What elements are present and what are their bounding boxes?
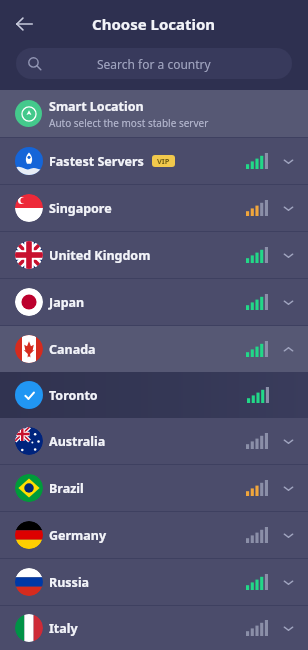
- staticText: Australia: [49, 433, 106, 450]
- other: Expand: [283, 156, 294, 167]
- button[interactable]: Brazil: [0, 465, 308, 511]
- other: Expand: [283, 530, 294, 541]
- staticText: Brazil: [49, 480, 84, 497]
- button[interactable]: Toronto: [0, 372, 308, 418]
- staticText: Russia: [49, 574, 90, 591]
- staticText: Choose Location: [92, 14, 216, 34]
- button[interactable]: Smart Location: [0, 90, 308, 137]
- other: Expand: [283, 203, 294, 214]
- button[interactable]: Russia: [0, 559, 308, 605]
- other: Expand: [283, 577, 294, 588]
- staticText: VIP: [157, 156, 170, 166]
- other: Collapse: [283, 344, 294, 355]
- button[interactable]: United Kingdom: [0, 232, 308, 278]
- button[interactable]: Fastest Servers: [0, 138, 308, 184]
- staticText: Auto select the most stable server: [49, 116, 209, 130]
- staticText: Search for a country: [97, 56, 211, 72]
- other: Expand: [283, 623, 294, 634]
- button[interactable]: Japan: [0, 279, 308, 325]
- button[interactable]: Search for a country: [16, 48, 292, 79]
- staticText: Germany: [49, 527, 107, 544]
- staticText: Japan: [49, 294, 85, 311]
- other: Expand: [283, 250, 294, 261]
- staticText: Smart Location: [49, 98, 144, 115]
- other: Expand: [283, 436, 294, 447]
- staticText: Canada: [49, 341, 96, 358]
- button[interactable]: Back: [6, 6, 42, 42]
- button[interactable]: Canada: [0, 326, 308, 372]
- staticText: Toronto: [49, 387, 98, 404]
- button[interactable]: Singapore: [0, 185, 308, 231]
- staticText: Italy: [49, 620, 78, 637]
- staticText: Singapore: [49, 200, 112, 217]
- staticText: United Kingdom: [49, 247, 151, 264]
- button[interactable]: Germany: [0, 512, 308, 558]
- other: Expand: [283, 483, 294, 494]
- other: Expand: [283, 297, 294, 308]
- button[interactable]: Italy: [0, 606, 308, 650]
- staticText: Fastest Servers: [49, 153, 144, 170]
- button[interactable]: Australia: [0, 418, 308, 464]
